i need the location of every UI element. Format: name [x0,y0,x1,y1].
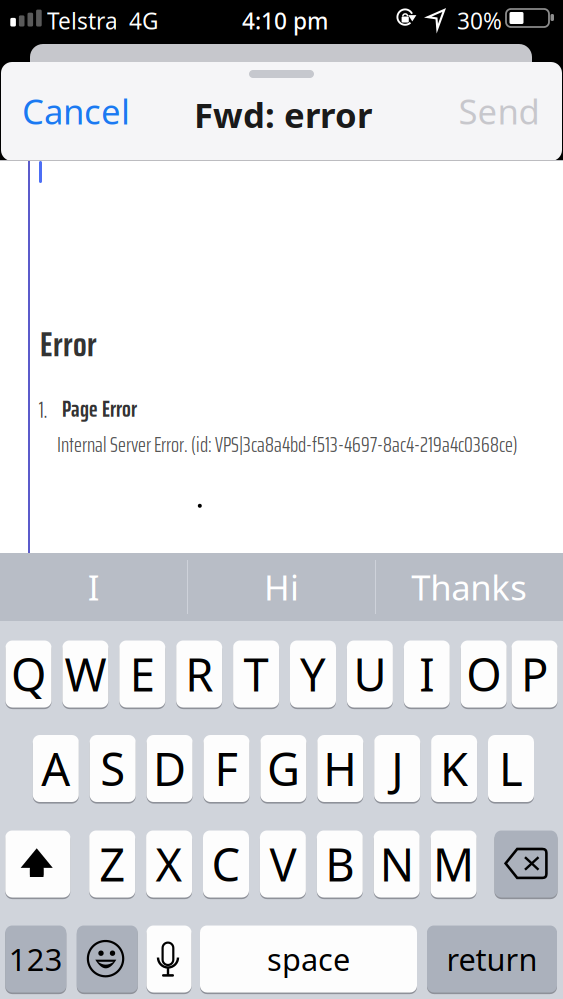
button[interactable]: J [374,735,420,802]
button[interactable]: P [511,640,557,707]
button[interactable]: R [176,640,222,707]
staticText: 30% [457,6,502,36]
button[interactable]: return [427,925,557,992]
button[interactable]: C [203,830,249,897]
staticText: I [88,564,100,610]
button[interactable]: M [431,830,477,897]
staticText: V [269,834,296,894]
button[interactable]: H [317,735,363,802]
staticText: P [521,644,548,704]
button[interactable]: Thanks [375,553,563,621]
button[interactable]: O [461,640,507,707]
staticText: B [325,834,354,894]
staticText: Telstra [47,6,118,36]
staticText: G [267,738,300,799]
button[interactable]: E [119,640,165,707]
staticText: 4G [129,6,159,36]
staticText: space [267,939,350,979]
staticText: E [130,644,155,704]
staticText: Y [300,644,326,704]
button[interactable]: B [317,830,363,897]
button[interactable]: Shift [5,830,70,897]
staticText: Cancel [22,88,130,134]
staticText: U [353,644,386,704]
staticText: C [211,834,240,894]
button[interactable]: Y [290,640,336,707]
staticText: 4:10 pm [242,6,328,36]
staticText: Z [99,834,125,894]
button[interactable]: Delete [494,830,557,897]
staticText: N [380,834,414,894]
button[interactable]: I [404,640,450,707]
staticText: L [499,738,523,799]
button[interactable]: Z [89,830,135,897]
button[interactable]: U [347,640,393,707]
button[interactable]: space [200,925,417,992]
button[interactable]: A [33,735,79,802]
staticText: D [153,738,186,799]
staticText: R [185,644,213,704]
staticText: M [433,834,474,894]
button[interactable]: F [203,735,249,802]
staticText: K [440,738,468,799]
button[interactable]: V [260,830,306,897]
staticText: return [446,939,537,979]
button[interactable]: K [431,735,477,802]
staticText: A [41,738,70,799]
staticText: Q [11,644,46,704]
staticText: Internal Server Error. (id: VPS|3ca8a4bd… [57,428,518,461]
staticText: X [156,834,183,894]
button[interactable]: N [374,830,420,897]
staticText: Send [458,88,539,134]
button[interactable]: Q [5,640,51,707]
button[interactable]: 123 [5,925,66,992]
button[interactable]: G [260,735,306,802]
button[interactable]: Dictate [146,925,191,992]
button[interactable]: Emoji [77,925,138,992]
button[interactable]: Cancel [20,88,132,134]
staticText: 1. [38,392,47,428]
staticText: O [466,644,501,704]
button[interactable]: D [147,735,193,802]
staticText: S [100,738,125,799]
button[interactable]: T [233,640,279,707]
button[interactable]: I [0,553,188,621]
button[interactable]: Hi [188,553,375,621]
staticText: Hi [264,564,299,610]
button[interactable]: W [62,640,108,707]
staticText: Thanks [411,564,527,610]
staticText: Page Error [62,391,137,427]
staticText: I [419,644,434,704]
staticText: W [64,644,106,704]
staticText: T [244,644,269,704]
button[interactable]: S [90,735,136,802]
staticText: H [323,738,357,799]
button[interactable]: X [146,830,192,897]
staticText: J [391,738,403,799]
staticText: Fwd: error [194,91,372,137]
button[interactable]: L [488,735,534,802]
staticText: 123 [9,939,63,979]
button[interactable]: Send [453,88,545,134]
staticText: Error [40,316,97,372]
staticText: F [214,738,238,799]
